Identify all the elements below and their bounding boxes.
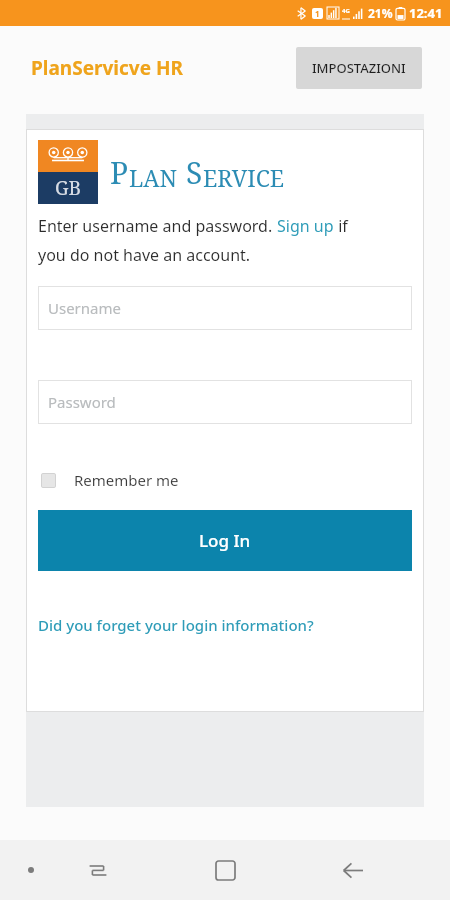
staticText: Enter username and password.	[38, 215, 277, 237]
staticText: P	[110, 152, 129, 193]
staticText: ERVICE	[203, 162, 285, 193]
button[interactable]: Sign up	[277, 215, 334, 237]
button[interactable]: Remember me	[38, 468, 179, 492]
staticText: LAN	[129, 162, 178, 193]
staticText: Did you forget your login information?	[38, 615, 314, 635]
button[interactable]: Did you forget your login information?	[38, 613, 314, 637]
staticText: Username	[48, 298, 121, 318]
staticText: S	[186, 152, 203, 193]
staticText: Log In	[199, 529, 251, 552]
staticText: Sign up	[277, 215, 334, 237]
button[interactable]: Username	[38, 286, 412, 330]
button[interactable]: Recent apps	[80, 852, 116, 888]
button[interactable]: Back	[332, 850, 372, 890]
staticText: you do not have an account.	[38, 244, 251, 266]
staticText: if	[334, 215, 348, 237]
staticText: 4G	[342, 7, 350, 15]
button[interactable]: Home	[205, 850, 245, 890]
staticText: PlanServicve HR	[31, 55, 183, 81]
button[interactable]: Log In	[38, 510, 412, 571]
button[interactable]: IMPOSTAZIONI	[296, 47, 422, 89]
staticText: IMPOSTAZIONI	[312, 59, 406, 77]
staticText: 21%	[368, 5, 393, 21]
button[interactable]: Password	[38, 380, 412, 424]
staticText: 12:41	[409, 4, 443, 22]
staticText: 1	[315, 8, 320, 19]
staticText: Password	[48, 392, 116, 412]
button[interactable]: Menu	[16, 855, 46, 885]
staticText: GB	[55, 175, 81, 201]
staticText: Remember me	[74, 470, 179, 490]
